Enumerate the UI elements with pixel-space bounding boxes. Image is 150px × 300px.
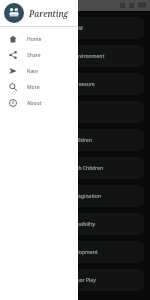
- staticText: Parenting Tips: [29, 8, 78, 19]
- staticText: Share: [27, 52, 41, 59]
- staticText: Healthy Communication with Children: [12, 165, 104, 172]
- button[interactable]: More: [0, 79, 78, 95]
- button[interactable]: Managing Sibling Rivalry: [6, 101, 144, 123]
- button[interactable]: Home: [0, 31, 78, 47]
- button[interactable]: Creating a Positive Home Environment: [6, 45, 144, 67]
- button[interactable]: Nurturing Creativity and Imagination: [6, 185, 144, 207]
- button[interactable]: About: [0, 95, 78, 111]
- button[interactable]: Share: [0, 47, 78, 63]
- staticText: Building Trust with Your Child: [12, 25, 83, 32]
- button[interactable]: Teaching Kids About Responsibility: [6, 213, 144, 235]
- button[interactable]: Supporting Emotional Development: [6, 241, 144, 263]
- button[interactable]: Healthy Communication with Children: [6, 157, 144, 179]
- button[interactable]: Rate: [0, 63, 78, 79]
- staticText: Rate: [27, 68, 38, 75]
- staticText: Nurturing Creativity and Imagination: [12, 193, 101, 200]
- staticText: The Value of Play and Outdoor Play: [12, 277, 96, 284]
- button[interactable]: The Value of Play and Outdoor Play: [6, 269, 144, 291]
- button[interactable]: Encouraging Curiosity in Children: [6, 129, 144, 151]
- staticText: Home: [27, 36, 42, 43]
- staticText: Supporting Emotional Development: [12, 249, 98, 256]
- staticText: About: [27, 100, 42, 107]
- staticText: Creating a Positive Home Environment: [12, 53, 105, 60]
- staticText: Encouraging Curiosity in Children: [12, 137, 92, 144]
- button[interactable]: Building Trust with Your Child: [6, 17, 144, 39]
- button[interactable]: Helping Kids Handle Peer Pressure: [6, 73, 144, 95]
- staticText: More: [27, 84, 40, 91]
- staticText: Helping Kids Handle Peer Pressure: [12, 81, 95, 88]
- staticText: Teaching Kids About Responsibility: [12, 221, 96, 228]
